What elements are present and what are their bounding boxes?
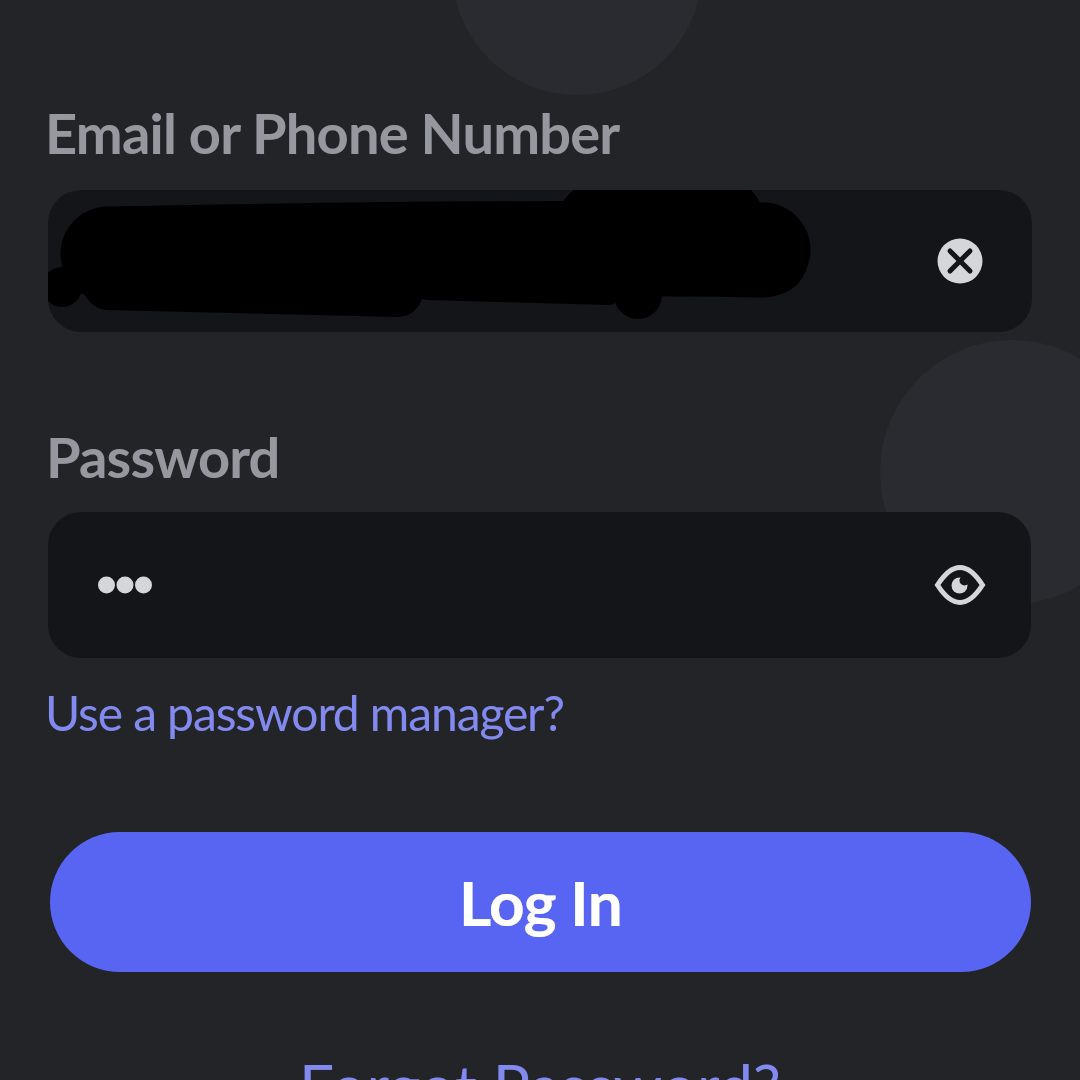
button[interactable]: Use a password manager? xyxy=(45,684,564,742)
staticText: Password xyxy=(46,423,280,490)
staticText: Log In xyxy=(459,865,623,939)
button[interactable] xyxy=(48,190,1032,332)
staticText: Email or Phone Number xyxy=(45,99,620,166)
button[interactable] xyxy=(936,561,984,609)
button[interactable]: Log In xyxy=(50,832,1031,972)
button[interactable] xyxy=(938,239,982,283)
button[interactable] xyxy=(48,512,1031,658)
button[interactable]: Forgot Password? xyxy=(299,1049,781,1080)
